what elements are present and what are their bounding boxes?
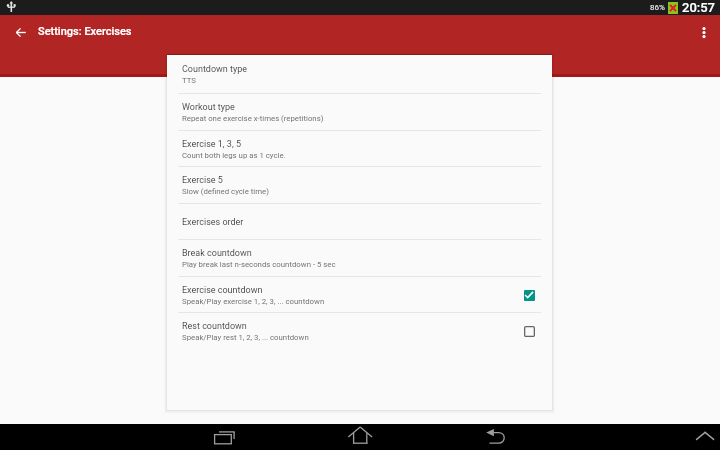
staticText: TTS xyxy=(182,76,196,85)
button[interactable]: Exercise countdown xyxy=(167,277,552,313)
button[interactable]: Back xyxy=(475,424,517,450)
staticText: Settings: Exercises xyxy=(38,25,132,38)
button[interactable]: Workout type xyxy=(167,94,552,130)
staticText: Repeat one exercise x-times (repetitions… xyxy=(182,114,324,123)
staticText: Slow (defined cycle time) xyxy=(182,187,269,196)
staticText: Speak/Play rest 1, 2, 3, ... countdown xyxy=(182,333,309,342)
button[interactable]: Show more xyxy=(684,424,720,450)
button[interactable]: Exercises order xyxy=(167,204,552,241)
button[interactable]: Rest countdown xyxy=(167,313,552,349)
button[interactable]: Toggle xyxy=(519,285,539,305)
staticText: Exercise countdown xyxy=(182,285,263,296)
staticText: Exercises order xyxy=(182,217,244,228)
button[interactable]: More options xyxy=(689,18,719,48)
staticText: Countdown type xyxy=(182,64,248,75)
staticText: Speak/Play exercise 1, 2, 3, ... countdo… xyxy=(182,297,325,306)
staticText: Break countdown xyxy=(182,248,252,259)
button[interactable]: Countdown type xyxy=(167,55,552,94)
staticText: Play break last n-seconds countdown - 5 … xyxy=(182,260,336,269)
staticText: Count both legs up as 1 cycle. xyxy=(182,151,286,160)
button[interactable]: Break countdown xyxy=(167,240,552,277)
button[interactable]: Exercise 1, 3, 5 xyxy=(167,131,552,168)
staticText: 20:57 xyxy=(682,0,716,15)
staticText: Rest countdown xyxy=(182,321,247,332)
staticText: Workout type xyxy=(182,102,235,113)
staticText: Exercise 1, 3, 5 xyxy=(182,139,241,150)
button[interactable]: Exercise 5 xyxy=(167,167,552,204)
staticText: Exercise 5 xyxy=(182,175,223,186)
staticText: 86% xyxy=(650,3,665,12)
button[interactable]: Home xyxy=(339,424,381,450)
button[interactable]: Navigate up xyxy=(7,19,34,46)
button[interactable]: Recent apps xyxy=(203,424,245,450)
button[interactable]: Toggle xyxy=(519,321,539,341)
